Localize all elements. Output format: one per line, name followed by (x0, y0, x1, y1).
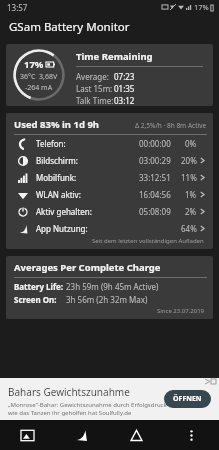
staticText: 16:04:56 (139, 189, 171, 200)
button[interactable]: Aktiv gehalten: (14, 203, 207, 220)
button[interactable]: ÖFFNEN (173, 394, 202, 404)
staticText: Bildschirm: (36, 155, 78, 166)
button[interactable]: Stats (109, 420, 164, 450)
staticText: Used 83% in 1d 9h (14, 118, 100, 131)
staticText: Aktiv gehalten: (36, 206, 92, 217)
staticText: 13:57 (7, 2, 28, 13)
button[interactable]: Bildschirm: (14, 152, 207, 169)
staticText: Since 23.07.2019 (157, 307, 205, 315)
button[interactable]: App usage (54, 420, 109, 450)
staticText: Talk Time: (76, 95, 114, 106)
staticText: Time Remaining (76, 50, 153, 63)
staticText: 17% (194, 2, 209, 12)
button[interactable]: App Nutzung: (14, 220, 207, 237)
staticText: Seit dem letzten vollständigen Aufladen (92, 237, 204, 245)
staticText: 07:23 (114, 71, 135, 82)
button[interactable]: WLAN aktiv: (14, 186, 207, 203)
button[interactable]: Bahars Gewichtszunahme (0, 378, 219, 420)
staticText: -264 mA (25, 83, 53, 93)
button[interactable]: Telefon: (14, 135, 207, 152)
staticText: Mobilfunk: (36, 172, 77, 183)
staticText: 23h 59m (9h 45m Active) (66, 281, 159, 292)
staticText: App Nutzung: (36, 223, 88, 234)
staticText: ÖFFNEN (173, 394, 202, 404)
staticText: Δ 2,5%/h · 8h 8m Active (135, 121, 207, 130)
staticText: wie das Tanzen ihr geholfen hat Soulfull… (8, 409, 132, 417)
staticText: 0% (185, 138, 197, 149)
staticText: 01:35 (114, 83, 135, 94)
button[interactable]: Gallery (0, 420, 54, 450)
staticText: WLAN aktiv: (36, 189, 81, 200)
staticText: Screen On: (14, 294, 57, 305)
staticText: „Monrose"-Bahar: Gewichtszunahme durch E… (8, 401, 184, 409)
staticText: 36°C 3,68V (20, 72, 58, 82)
staticText: Battery Life: (14, 281, 64, 292)
staticText: 2% (185, 206, 197, 217)
staticText: Bahars Gewichtszunahme (8, 385, 130, 399)
staticText: 1% (185, 189, 197, 200)
button[interactable]: More options (164, 420, 219, 450)
staticText: 64% (181, 223, 197, 234)
button[interactable]: 17% (6, 44, 213, 106)
staticText: Averages Per Complete Charge (14, 261, 161, 274)
staticText: GSam Battery Monitor (9, 19, 130, 35)
staticText: Average: (76, 71, 109, 82)
staticText: 17% (24, 58, 44, 71)
staticText: Last 15m: (76, 83, 113, 94)
staticText: 03:00:29 (139, 155, 171, 166)
staticText: 33:12:51 (139, 172, 171, 183)
staticText: 3h 56m (2h 32m Max) (66, 294, 148, 305)
staticText: 20% (181, 155, 197, 166)
staticText: 03:12 (114, 95, 135, 106)
staticText: Telefon: (36, 138, 66, 149)
staticText: 05:08:09 (139, 206, 171, 217)
staticText: 00:00:00 (139, 138, 171, 149)
staticText: 11% (181, 172, 197, 183)
button[interactable]: Mobilfunk: (14, 169, 207, 186)
